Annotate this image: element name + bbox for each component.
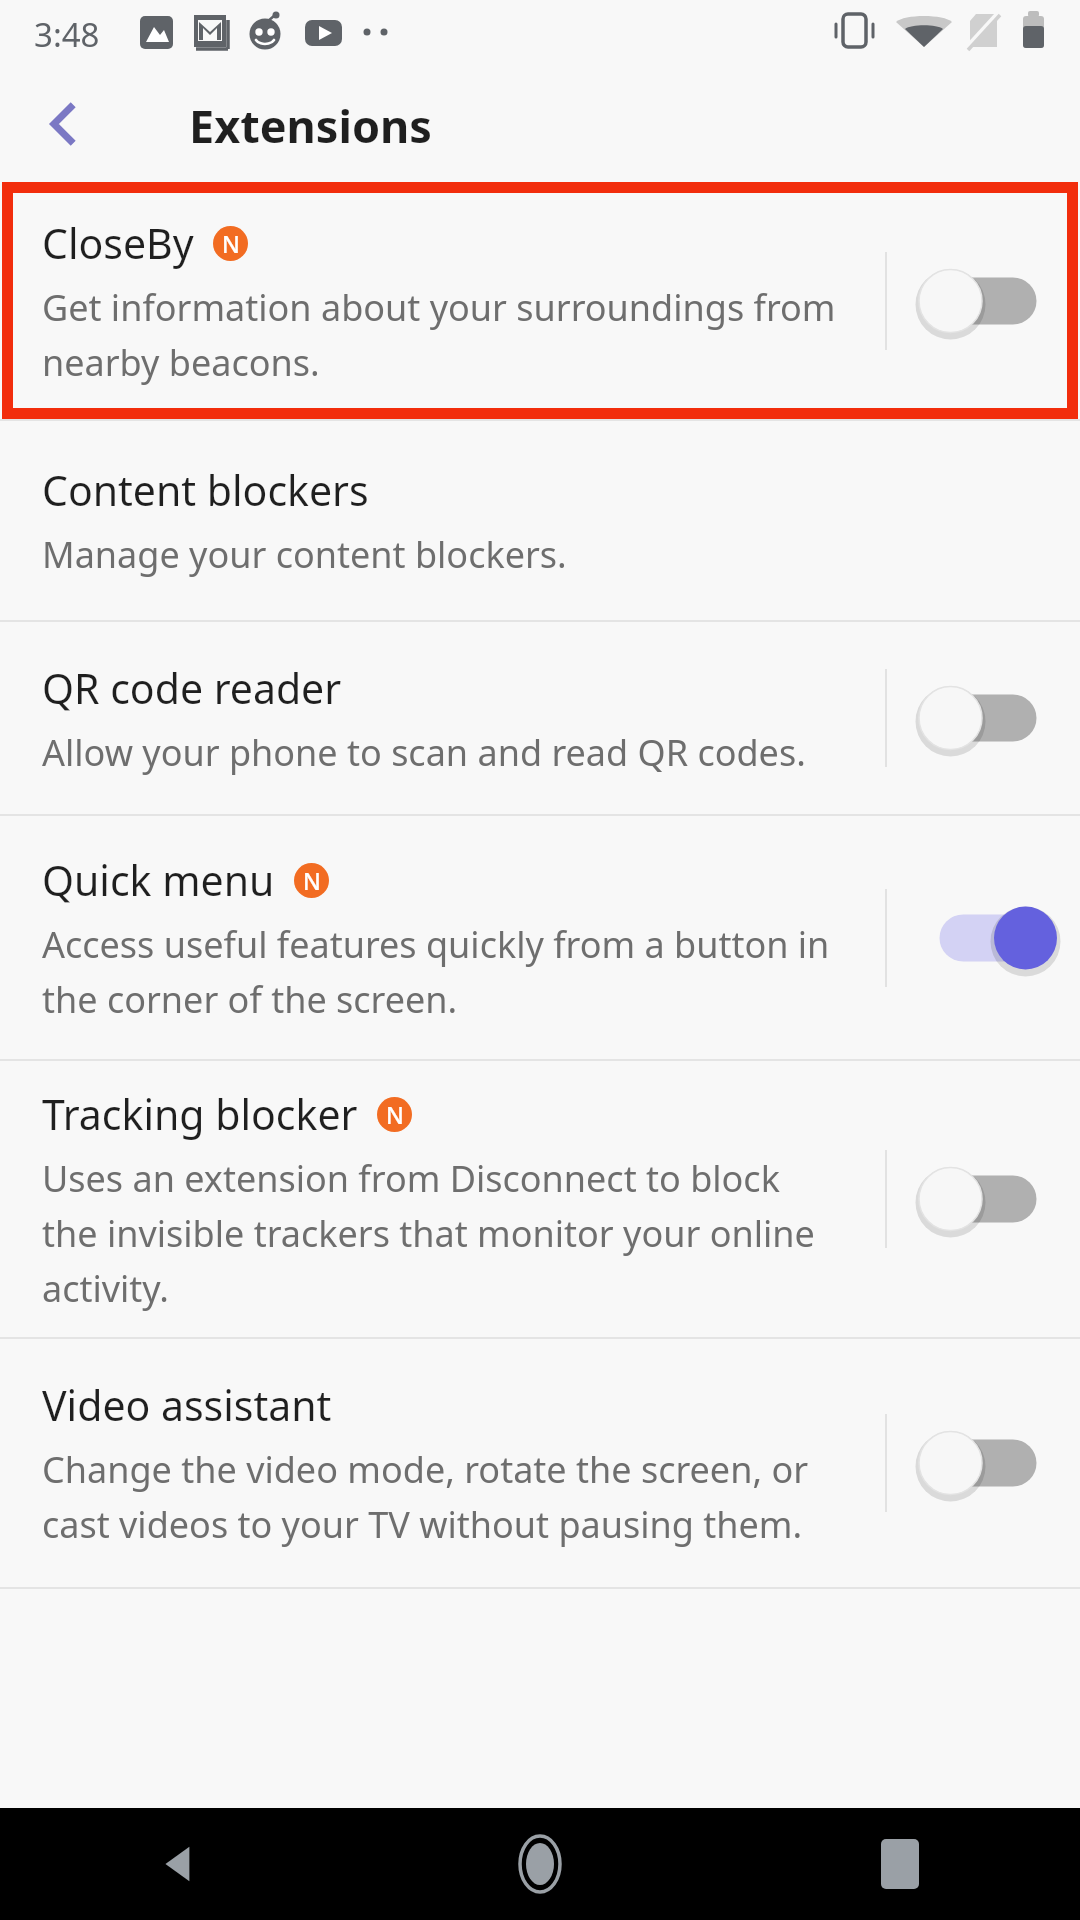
staticText: Video assistant [42, 1377, 332, 1433]
staticText: N [222, 228, 240, 259]
button[interactable]: Turn on Video assistant [920, 1413, 1056, 1513]
button[interactable]: Recent apps [720, 1808, 1080, 1920]
staticText: Manage your content blockers. [42, 530, 567, 579]
staticText: Tracking blocker [42, 1086, 358, 1142]
staticText: Access useful features quickly from a bu… [42, 920, 844, 1024]
button[interactable]: Video assistant [0, 1339, 1080, 1587]
staticText: Uses an extension from Disconnect to blo… [42, 1154, 844, 1313]
button[interactable]: Turn on Tracking blocker [920, 1149, 1056, 1249]
staticText: N [303, 865, 321, 896]
button[interactable]: Home [360, 1808, 720, 1920]
button[interactable]: Back [18, 78, 110, 170]
staticText: Extensions [189, 95, 432, 156]
staticText: 3:48 [34, 12, 100, 57]
staticText: QR code reader [42, 660, 342, 716]
button[interactable]: QR code reader [0, 622, 1080, 814]
staticText: Allow your phone to scan and read QR cod… [42, 728, 806, 777]
button[interactable]: Turn off Quick menu [920, 888, 1056, 988]
button[interactable]: CloseBy [0, 183, 1080, 419]
staticText: Change the video mode, rotate the screen… [42, 1445, 844, 1549]
staticText: Get information about your surroundings … [42, 283, 844, 387]
staticText: CloseBy [42, 215, 194, 271]
button[interactable]: Back [0, 1808, 360, 1920]
staticText: Content blockers [42, 462, 369, 518]
button[interactable]: Quick menu [0, 816, 1080, 1059]
button[interactable]: Tracking blocker [0, 1061, 1080, 1337]
button[interactable]: Turn on CloseBy [920, 251, 1056, 351]
staticText: Quick menu [42, 852, 275, 908]
button[interactable]: Turn on QR code reader [920, 668, 1056, 768]
button[interactable]: Content blockers [0, 421, 1080, 620]
staticText: N [386, 1099, 404, 1130]
